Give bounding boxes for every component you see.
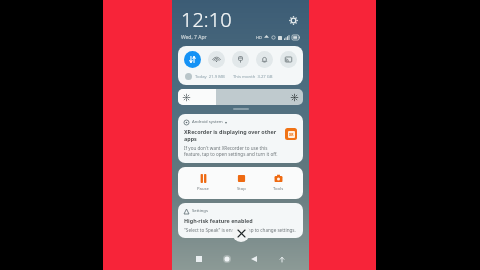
staticText: If you don't want XRecorder to use this … [184,145,278,158]
button[interactable]: Settings [178,203,303,238]
button[interactable]: Toggle [256,51,273,68]
staticText: Stop [237,186,246,192]
button[interactable]: Toggle [232,51,249,68]
staticText: XR [289,132,294,137]
staticText: Wed, 7 Apr [181,34,207,41]
button[interactable]: Tools [265,173,292,193]
staticText: Today 21.9 MB [195,74,225,80]
button[interactable]: Recents [188,249,210,269]
button[interactable]: Toggle [280,51,297,68]
staticText: Pause [197,186,209,192]
staticText: HD [256,35,262,40]
staticText: Android system [192,119,223,125]
button[interactable]: Home [216,249,238,269]
button[interactable]: Back [243,249,265,269]
button[interactable]: Close [232,224,250,242]
staticText: XRecorder is displaying over other apps [184,128,281,142]
staticText: Settings [192,208,208,214]
staticText: "Select to Speak" is enabled. Tap to cha… [184,227,296,233]
staticText: This month 3.27 GB [233,74,273,80]
button[interactable]: Pause [189,173,217,193]
button[interactable]: Brightness [178,89,303,105]
button[interactable]: Settings [286,13,300,27]
button[interactable]: Today 21.9 MB [185,73,296,80]
staticText: High-risk feature enabled [184,217,253,224]
button[interactable]: Toggle on [184,51,201,68]
staticText: Tools [273,186,284,192]
button[interactable]: Hide keyboard [271,249,293,269]
button[interactable]: Stop [229,173,254,193]
staticText: ▾ [225,120,228,125]
button[interactable]: Toggle [208,51,225,68]
button[interactable]: Android system [178,114,303,163]
staticText: 12:10 [181,6,232,33]
